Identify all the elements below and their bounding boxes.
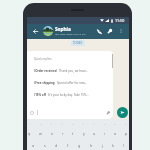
- staticText: 5: [72, 122, 74, 125]
- button[interactable]: /15% off: [27, 89, 113, 101]
- staticText: /15% off: [34, 93, 46, 97]
- staticText: last seen today at 8:12 PM: [55, 32, 86, 35]
- staticText: 8: [104, 122, 106, 125]
- staticText: Thank you, we have...: [59, 69, 89, 73]
- button[interactable]: Attach: [105, 27, 113, 35]
- staticText: g: [78, 143, 81, 148]
- button[interactable]: More options: [118, 28, 124, 34]
- staticText: 1: [29, 122, 31, 125]
- staticText: s: [44, 143, 46, 148]
- staticText: /Free shipping: [34, 81, 55, 85]
- staticText: h: [90, 143, 93, 148]
- staticText: u: [93, 131, 96, 136]
- staticText: /Order received: [34, 69, 57, 73]
- staticText: a: [32, 143, 35, 148]
- staticText: It's your lucky day. Take 15%...: [48, 93, 89, 97]
- staticText: y: [83, 131, 85, 136]
- staticText: 4: [61, 122, 63, 125]
- staticText: Special offer for new...: [57, 81, 88, 85]
- staticText: p: [125, 131, 128, 136]
- staticText: 6: [82, 122, 84, 125]
- staticText: i: [104, 131, 105, 136]
- staticText: r: [62, 131, 64, 136]
- staticText: t: [72, 131, 74, 136]
- staticText: l: [123, 143, 124, 148]
- staticText: 9: [114, 122, 116, 125]
- staticText: Sophia: [55, 26, 71, 32]
- staticText: j: [102, 143, 103, 148]
- button[interactable]: Send: [117, 107, 128, 118]
- staticText: f: [67, 143, 69, 148]
- staticText: e: [51, 131, 54, 136]
- staticText: k: [112, 143, 114, 148]
- button[interactable]: /Order received: [27, 65, 113, 77]
- button[interactable]: [27, 106, 113, 119]
- staticText: TODAY: [73, 41, 83, 45]
- staticText: d: [55, 143, 58, 148]
- staticText: 0: [125, 122, 127, 125]
- staticText: Quick replies: [34, 57, 52, 61]
- staticText: o: [114, 131, 117, 136]
- staticText: 2: [40, 122, 42, 125]
- staticText: 3: [50, 122, 52, 125]
- staticText: w: [39, 131, 42, 136]
- button[interactable]: Back: [30, 26, 40, 36]
- staticText: 7: [93, 122, 95, 125]
- staticText: 11:50: [115, 18, 125, 23]
- button[interactable]: /Free shipping: [27, 77, 113, 89]
- staticText: q: [28, 131, 31, 136]
- button[interactable]: Call: [95, 27, 103, 35]
